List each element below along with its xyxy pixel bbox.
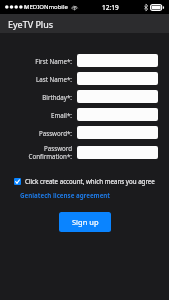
- staticText: EyeTV Plus: [8, 18, 54, 30]
- staticText: Last Name*:: [35, 75, 72, 83]
- button[interactable]: First Name*:: [77, 54, 158, 67]
- staticText: Click create account, which means you ag…: [25, 177, 155, 185]
- staticText: 12:19: [102, 3, 119, 12]
- staticText: Birthday*:: [42, 93, 72, 101]
- button[interactable]: Password Confirmation*:: [77, 146, 158, 159]
- button[interactable]: Birthday*:: [77, 90, 158, 103]
- staticText: Geniatech license agreement: [20, 191, 111, 199]
- staticText: MEDIONmobile: [24, 3, 68, 11]
- staticText: First Name*:: [35, 57, 72, 65]
- staticText: Password*:: [38, 129, 72, 137]
- button[interactable]: Password*:: [77, 126, 158, 139]
- button[interactable]: Geniatech license agreement: [20, 191, 111, 199]
- button[interactable]: Sign up: [59, 212, 111, 232]
- button[interactable]: Last Name*:: [77, 72, 158, 85]
- staticText: Sign up: [72, 217, 99, 227]
- staticText: Email*:: [51, 111, 72, 119]
- button[interactable]: Email*:: [77, 108, 158, 121]
- button[interactable]: Click create account, which means you ag…: [0, 177, 169, 185]
- staticText: Password Confirmation*:: [0, 144, 72, 160]
